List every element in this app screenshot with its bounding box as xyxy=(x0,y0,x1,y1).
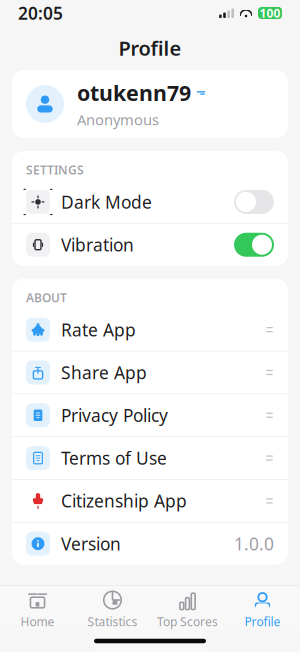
staticText: Statistics xyxy=(87,613,137,629)
staticText: otukenn79 xyxy=(77,79,191,107)
button[interactable]: Dark Mode xyxy=(12,181,288,223)
staticText: Share App xyxy=(61,361,147,384)
staticText: 20:05 xyxy=(18,1,63,24)
button[interactable]: Vibration xyxy=(12,224,288,266)
button[interactable]: Home xyxy=(0,582,75,633)
staticText: Profile xyxy=(118,35,181,61)
button[interactable]: Terms of Use xyxy=(12,437,288,479)
button[interactable]: Profile xyxy=(225,582,300,633)
button[interactable]: Rate App xyxy=(12,309,288,351)
button[interactable]: Citizenship App xyxy=(12,480,288,522)
staticText: Vibration xyxy=(61,233,134,256)
staticText: 100 xyxy=(259,5,280,21)
staticText: SETTINGS xyxy=(26,162,84,178)
staticText: Version xyxy=(61,532,121,555)
button[interactable]: Top Scores xyxy=(150,582,225,633)
staticText: Dark Mode xyxy=(61,190,152,213)
button[interactable]: Share App xyxy=(12,351,288,393)
button[interactable]: Statistics xyxy=(75,582,150,633)
staticText: Privacy Policy xyxy=(61,404,168,427)
staticText: Top Scores xyxy=(157,613,218,629)
staticText: Citizenship App xyxy=(61,489,187,512)
button[interactable]: otukenn79 xyxy=(12,70,288,138)
staticText: 1.0.0 xyxy=(234,532,274,555)
staticText: ABOUT xyxy=(26,290,67,306)
button[interactable]: Privacy Policy xyxy=(12,394,288,436)
staticText: Anonymous xyxy=(77,110,159,129)
staticText: Profile xyxy=(244,613,280,629)
staticText: Terms of Use xyxy=(61,447,167,470)
staticText: Rate App xyxy=(61,318,136,341)
button[interactable]: Version xyxy=(12,523,288,565)
staticText: Home xyxy=(20,613,54,629)
